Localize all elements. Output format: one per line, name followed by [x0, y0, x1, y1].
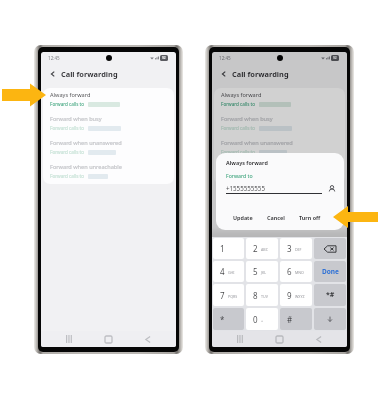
button[interactable]: Forward when busy [214, 112, 345, 136]
staticText: 12:45 [219, 55, 231, 61]
button[interactable]: 6 [280, 261, 312, 282]
staticText: +1555555555 [226, 184, 265, 192]
staticText: 3 [287, 243, 292, 254]
staticText: Forward calls to [221, 173, 256, 179]
staticText: Forward to [226, 172, 253, 179]
staticText: GHI [228, 270, 235, 275]
staticText: Forward when busy [50, 115, 102, 123]
staticText: Forward calls to [50, 125, 85, 131]
button[interactable]: 2 [246, 238, 278, 259]
staticText: 0 [253, 314, 258, 325]
button[interactable]: Forward when unanswered [214, 136, 345, 160]
staticText: WXYZ [295, 294, 305, 299]
button[interactable]: Update [229, 211, 257, 224]
other: Select contact [328, 185, 336, 193]
staticText: ABC [261, 247, 268, 252]
button[interactable]: Home [95, 331, 121, 347]
button[interactable]: Home [266, 331, 292, 347]
staticText: Forward when unanswered [50, 139, 122, 147]
button[interactable]: 3 [280, 238, 312, 259]
staticText: * [220, 314, 225, 325]
staticText: + [261, 318, 264, 323]
button[interactable]: Recent apps [56, 331, 82, 347]
staticText: TUV [261, 294, 268, 299]
staticText: Call forwarding [232, 69, 289, 79]
button[interactable]: Back [212, 64, 347, 84]
staticText: 8 [253, 290, 258, 301]
staticText: Forward calls to [221, 149, 256, 155]
staticText: Forward when unreachable [50, 163, 122, 171]
button[interactable]: Always forward [43, 88, 174, 112]
staticText: JKL [261, 270, 267, 275]
button[interactable]: 1 [213, 238, 244, 259]
staticText: Forward when busy [221, 115, 273, 123]
button[interactable]: 7 [213, 284, 244, 306]
staticText: Forward when unanswered [221, 139, 293, 147]
button[interactable]: Backspace [314, 238, 346, 259]
button[interactable]: Turn off [295, 211, 325, 224]
staticText: Always forward [221, 91, 262, 99]
staticText: DEF [295, 247, 302, 252]
staticText: Done [322, 267, 339, 276]
other: Enter [326, 315, 334, 323]
staticText: Forward when unreachable [221, 163, 293, 171]
other: Back [220, 70, 228, 78]
staticText: *# [326, 290, 335, 300]
button[interactable]: 5 [246, 261, 278, 282]
button[interactable]: # [280, 308, 312, 330]
staticText: PQRS [228, 294, 238, 299]
button[interactable]: Cancel [263, 211, 289, 224]
button[interactable]: 4 [213, 261, 244, 282]
staticText: Always forward [50, 91, 91, 99]
staticText: 2 [253, 243, 258, 254]
button[interactable]: Back [306, 331, 332, 347]
staticText: Forward calls to [221, 101, 256, 107]
staticText: 4 [220, 266, 225, 277]
staticText: 1 [220, 243, 225, 254]
button[interactable]: Back [41, 64, 176, 84]
button[interactable]: * [213, 308, 244, 330]
staticText: 92 [162, 56, 166, 60]
staticText: Forward calls to [50, 149, 85, 155]
staticText: Turn off [299, 214, 321, 221]
staticText: Always forward [226, 159, 268, 166]
staticText: Cancel [267, 214, 285, 221]
button[interactable]: Enter [314, 308, 346, 330]
button[interactable]: Forward when busy [43, 112, 174, 136]
button[interactable]: *# [314, 284, 346, 306]
staticText: 12:45 [48, 55, 60, 61]
button[interactable]: Back [135, 331, 161, 347]
button[interactable]: Recent apps [227, 331, 253, 347]
staticText: # [287, 314, 293, 325]
staticText: Forward calls to [50, 101, 85, 107]
button[interactable]: 8 [246, 284, 278, 306]
staticText: 6 [287, 266, 292, 277]
other: Backspace [324, 245, 336, 253]
staticText: 5 [253, 266, 258, 277]
button[interactable]: 9 [280, 284, 312, 306]
button[interactable]: Always forward [214, 88, 345, 112]
staticText: Forward calls to [221, 125, 256, 131]
staticText: Update [233, 214, 253, 221]
staticText: MNO [295, 270, 304, 275]
staticText: 7 [220, 290, 225, 301]
staticText: Call forwarding [61, 69, 118, 79]
button[interactable]: Forward when unanswered [43, 136, 174, 160]
staticText: Forward calls to [50, 173, 85, 179]
button[interactable]: Forward when unreachable [214, 160, 345, 184]
button[interactable]: 0 [246, 308, 278, 330]
staticText: 92 [333, 56, 337, 60]
button[interactable]: Done [314, 261, 346, 282]
staticText: 9 [287, 290, 292, 301]
button[interactable]: Forward when unreachable [43, 160, 174, 184]
other: Back [49, 70, 57, 78]
